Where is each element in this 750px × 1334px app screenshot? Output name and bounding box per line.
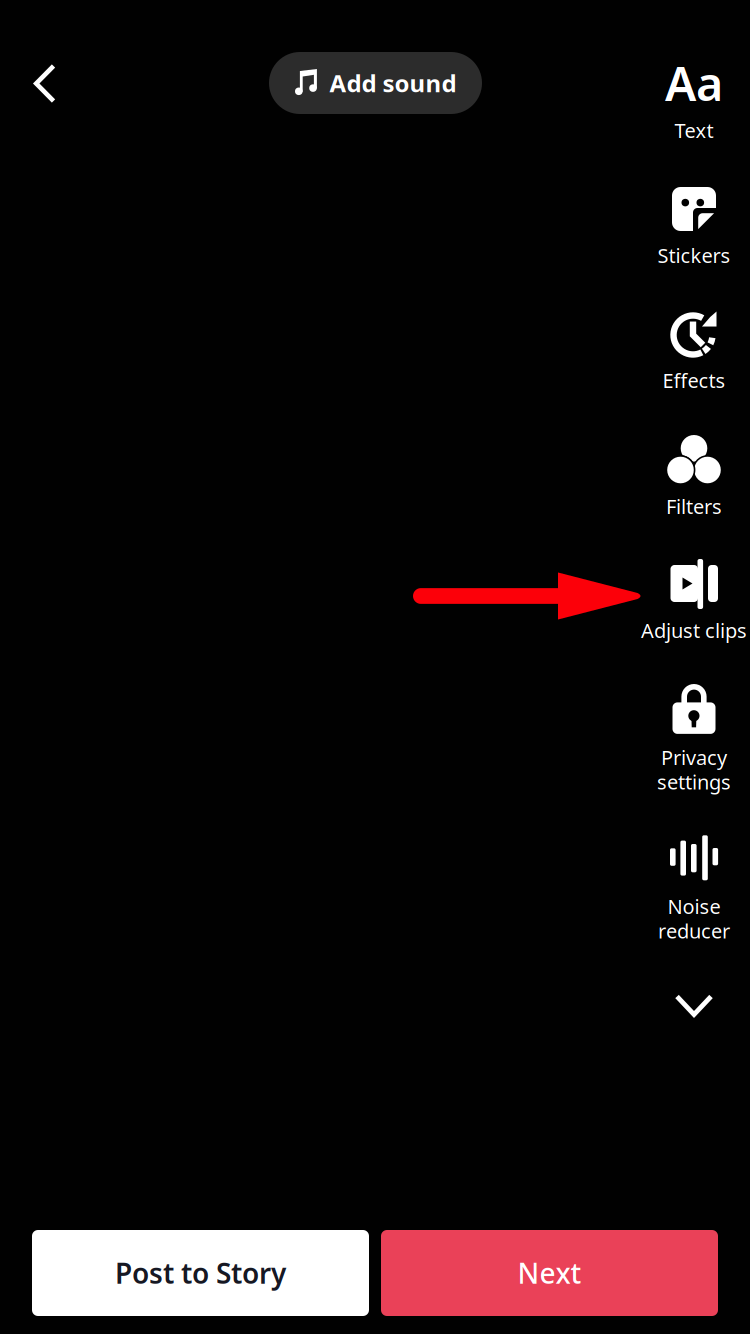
button[interactable]: Privacy (619, 683, 750, 796)
staticText: Filters (666, 493, 722, 520)
staticText: Aa (665, 52, 723, 114)
button[interactable]: Filters (619, 435, 750, 522)
staticText: Next (517, 1254, 581, 1292)
staticText: settings (657, 769, 731, 795)
staticText: Add sound (329, 67, 456, 99)
staticText: reducer (658, 918, 730, 944)
button[interactable]: Effects (619, 309, 750, 396)
staticText: Post to Story (115, 1254, 286, 1292)
button[interactable]: Collapse tools (619, 994, 750, 1016)
staticText: Noise (667, 893, 720, 920)
staticText: Effects (662, 367, 725, 394)
button[interactable]: Next (381, 1230, 718, 1316)
button[interactable]: Adjust clips (619, 559, 750, 646)
button[interactable]: Add sound (269, 52, 482, 114)
staticText: Text (674, 117, 713, 144)
button[interactable]: Post to Story (32, 1230, 369, 1316)
staticText: Adjust clips (641, 617, 747, 644)
staticText: Privacy (661, 744, 727, 771)
staticText: Stickers (657, 242, 730, 269)
button[interactable]: Stickers (619, 187, 750, 271)
button[interactable]: Aa (619, 64, 750, 146)
button[interactable]: Back (14, 55, 78, 113)
button[interactable]: Noise (619, 835, 750, 945)
